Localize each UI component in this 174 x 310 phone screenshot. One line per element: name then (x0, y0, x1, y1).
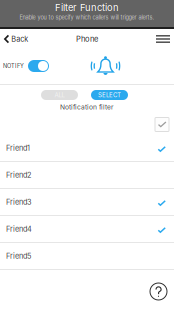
staticText: SELECT (98, 91, 121, 99)
button[interactable]: Friend5 (0, 243, 174, 270)
staticText: Filter Function (55, 2, 119, 13)
staticText: Notification filter (60, 103, 114, 111)
button[interactable]: Friend4 (0, 216, 174, 243)
button[interactable]: SELECT (91, 90, 128, 100)
staticText: Friend3 (6, 198, 32, 206)
staticText: Back (11, 35, 28, 43)
button[interactable]: Help (150, 283, 167, 300)
button[interactable]: Friend3 (0, 189, 174, 216)
staticText: ALL (54, 91, 64, 99)
button[interactable]: Back (0, 30, 34, 48)
button[interactable]: Select all (155, 117, 169, 131)
button[interactable]: ALL (41, 90, 78, 100)
button[interactable]: Friend1 (0, 135, 174, 162)
staticText: Friend4 (6, 225, 32, 233)
staticText: Enable you to specify which callers will… (19, 14, 154, 21)
button[interactable]: Menu (150, 30, 174, 48)
staticText: Friend5 (6, 252, 31, 260)
staticText: Friend1 (6, 144, 30, 152)
staticText: Friend2 (6, 171, 31, 179)
button[interactable]: Notify (24, 60, 49, 72)
staticText: Phone (76, 34, 98, 44)
staticText: NOTIFY (3, 63, 24, 69)
button[interactable]: Friend2 (0, 162, 174, 189)
